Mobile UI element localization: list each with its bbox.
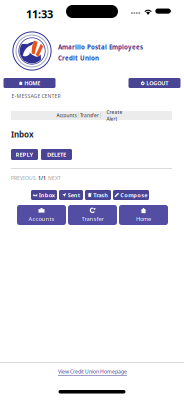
button[interactable]: Transfer bbox=[78, 111, 100, 120]
staticText: Sent bbox=[68, 191, 80, 199]
button[interactable]: Compose bbox=[113, 190, 149, 200]
staticText: LOGOUT bbox=[146, 79, 168, 87]
staticText: 1/1 bbox=[38, 174, 46, 181]
staticText: DELETE bbox=[47, 150, 66, 158]
staticText: Compose bbox=[120, 191, 147, 199]
staticText: Accounts bbox=[56, 112, 76, 119]
button[interactable]: LOGOUT bbox=[128, 78, 180, 88]
staticText: Trash bbox=[93, 191, 108, 199]
button[interactable]: Inbox bbox=[31, 190, 57, 200]
button[interactable]: Accounts bbox=[55, 111, 78, 120]
staticText: Create Alert bbox=[107, 109, 123, 122]
staticText: HOME bbox=[24, 79, 40, 87]
staticText: Inbox bbox=[39, 191, 55, 199]
button[interactable]: View Credit Union Homepage bbox=[58, 368, 127, 376]
staticText: Accounts bbox=[28, 215, 54, 223]
staticText: Credit Union bbox=[58, 54, 99, 62]
button[interactable]: REPLY bbox=[11, 149, 38, 160]
staticText: REPLY bbox=[15, 150, 33, 158]
staticText: E-MESSAGE CENTER bbox=[11, 92, 60, 99]
button[interactable]: Trash bbox=[85, 190, 111, 200]
staticText: Inbox bbox=[11, 129, 34, 140]
button[interactable]: DELETE bbox=[41, 149, 72, 160]
staticText: NEXT bbox=[48, 174, 61, 181]
staticText: Transfer bbox=[80, 112, 99, 119]
button[interactable]: Accounts bbox=[17, 205, 66, 225]
staticText: PREVIOUS bbox=[11, 174, 36, 181]
button[interactable]: NEXT bbox=[48, 174, 61, 181]
button[interactable]: Create Alert bbox=[101, 111, 128, 120]
button[interactable]: Sent bbox=[59, 190, 83, 200]
staticText: View Credit Union Homepage bbox=[58, 368, 127, 375]
staticText: Amarillo Postal Employees bbox=[58, 43, 143, 51]
button[interactable]: Home bbox=[119, 205, 168, 225]
button[interactable]: Transfer bbox=[68, 205, 117, 225]
staticText: Home bbox=[136, 215, 151, 223]
staticText: 11:33 bbox=[26, 6, 53, 21]
staticText: Transfer bbox=[81, 215, 103, 223]
button[interactable]: PREVIOUS bbox=[11, 174, 36, 181]
button[interactable]: HOME bbox=[3, 78, 55, 88]
